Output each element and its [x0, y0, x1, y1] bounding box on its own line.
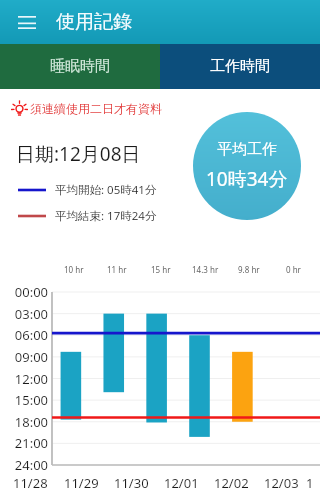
staticText: 0 hr	[286, 264, 301, 275]
staticText: 15:00	[0, 391, 48, 409]
staticText: 12/01	[164, 474, 199, 492]
staticText: 工作時間	[210, 57, 270, 76]
staticText: 睡眠時間	[50, 57, 110, 76]
staticText: 9.8 hr	[238, 264, 260, 275]
staticText: 10 hr	[64, 264, 84, 275]
staticText: 平均工作	[217, 140, 277, 159]
staticText: 須連續使用二日才有資料	[30, 101, 162, 116]
staticText: 使用記錄	[56, 10, 132, 34]
staticText: 14.3 hr	[192, 264, 219, 275]
button[interactable]: 平均工作	[193, 112, 301, 220]
staticText: 12:00	[0, 370, 48, 388]
staticText: 11 hr	[107, 264, 127, 275]
staticText: 00:00	[0, 283, 48, 301]
staticText: 11/30	[114, 474, 149, 492]
button[interactable]: 工作時間	[160, 44, 320, 89]
staticText: 12/02	[214, 474, 249, 492]
staticText: 21:00	[0, 434, 48, 452]
staticText: 03:00	[0, 305, 48, 323]
staticText: 12/03	[264, 474, 299, 492]
staticText: 1	[306, 474, 314, 492]
staticText: 09:00	[0, 348, 48, 366]
button[interactable]: 睡眠時間	[0, 44, 160, 89]
staticText: 11/28	[13, 474, 48, 492]
staticText: 10時34分	[206, 166, 288, 192]
staticText: 24:00	[0, 456, 48, 474]
staticText: 15 hr	[151, 264, 171, 275]
staticText: 06:00	[0, 326, 48, 344]
staticText: 18:00	[0, 413, 48, 431]
staticText: 日期:12月08日	[16, 141, 141, 167]
button[interactable]: Open navigation menu	[11, 6, 43, 38]
staticText: 平均結束: 17時24分	[55, 208, 157, 224]
staticText: 11/29	[64, 474, 99, 492]
staticText: 平均開始: 05時41分	[55, 182, 157, 198]
